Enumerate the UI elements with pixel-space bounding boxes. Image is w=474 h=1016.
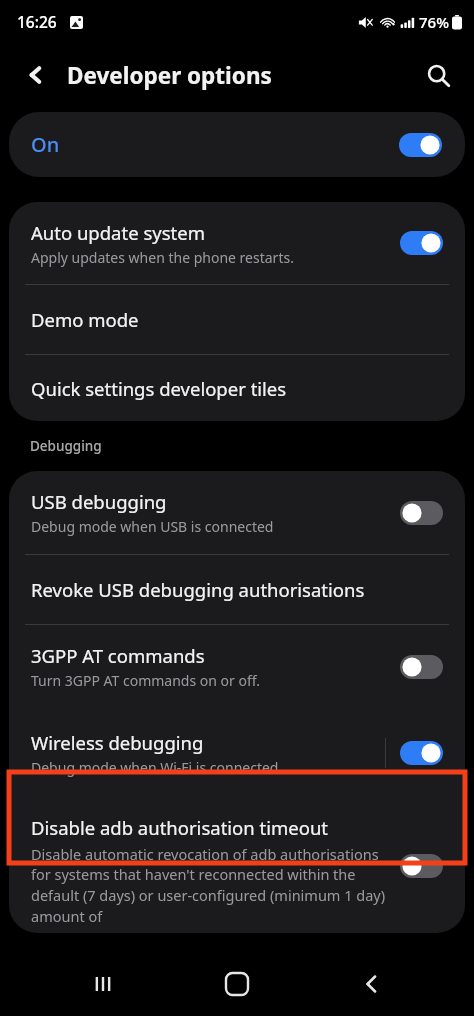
button[interactable]: Wireless debugging xyxy=(9,708,465,798)
button[interactable]: Quick settings developer tiles xyxy=(9,355,465,421)
staticText: Debug mode when USB is connected xyxy=(31,517,274,536)
button[interactable]: 3GPP AT commands xyxy=(9,625,465,708)
button[interactable]: Search xyxy=(418,55,458,95)
staticText: 76% xyxy=(419,12,449,32)
staticText: Apply updates when the phone restarts. xyxy=(31,248,294,267)
staticText: Developer options xyxy=(67,60,272,91)
button[interactable]: On xyxy=(9,112,465,177)
staticText: Auto update system xyxy=(31,220,205,245)
staticText: Wireless debugging xyxy=(31,730,204,755)
staticText: Disable adb authorisation timeout xyxy=(31,815,329,840)
button[interactable]: Disable adb authorisation timeout xyxy=(9,798,465,933)
button[interactable]: Recents xyxy=(71,952,135,1016)
staticText: Disable automatic revocation of adb auth… xyxy=(31,844,392,927)
button[interactable]: Revoke USB debugging authorisations xyxy=(9,555,465,624)
button[interactable]: Demo mode xyxy=(9,285,465,354)
button[interactable]: Back xyxy=(18,57,54,93)
staticText: Debug mode when Wi-Fi is connected xyxy=(31,758,279,777)
staticText: Revoke USB debugging authorisations xyxy=(31,577,365,602)
staticText: On xyxy=(31,131,60,158)
button[interactable]: Back xyxy=(340,952,404,1016)
staticText: 16:26 xyxy=(17,11,57,32)
staticText: Quick settings developer tiles xyxy=(31,376,287,401)
staticText: USB debugging xyxy=(31,489,167,514)
button[interactable]: Home xyxy=(205,952,269,1016)
button[interactable]: USB debugging xyxy=(9,471,465,554)
staticText: Debugging xyxy=(30,437,102,455)
staticText: 3GPP AT commands xyxy=(31,643,205,668)
staticText: Demo mode xyxy=(31,307,139,332)
staticText: Turn 3GPP AT commands on or off. xyxy=(31,671,261,690)
button[interactable]: Auto update system xyxy=(9,202,465,284)
